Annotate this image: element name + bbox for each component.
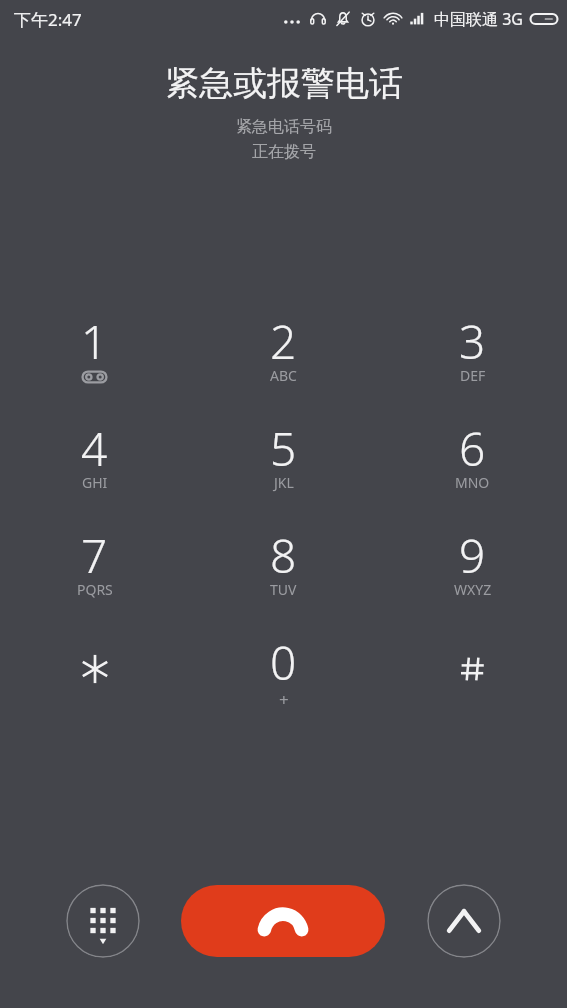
staticText: 3 — [459, 310, 486, 373]
staticText: PQRS — [77, 580, 113, 599]
staticText: 8 — [270, 524, 297, 587]
staticText: TUV — [270, 580, 297, 599]
staticText: MNO — [455, 473, 490, 492]
button[interactable]: 9 — [378, 514, 567, 621]
button[interactable]: End call — [181, 885, 385, 957]
staticText: 9 — [459, 524, 486, 587]
staticText: 紧急或报警电话 — [165, 62, 403, 105]
staticText: GHI — [82, 473, 108, 492]
button[interactable]: 8 — [189, 514, 378, 621]
staticText: 紧急电话号码 — [236, 117, 332, 137]
staticText: ABC — [270, 366, 297, 385]
staticText: 中国联通 3G — [434, 8, 523, 30]
button[interactable]: Hide dialpad — [66, 884, 140, 958]
button[interactable]: 3 — [378, 300, 567, 407]
staticText: 4 — [81, 417, 108, 480]
button[interactable]: 5 — [189, 407, 378, 514]
staticText: + — [279, 688, 289, 711]
staticText: JKL — [274, 473, 294, 492]
button[interactable]: 7 — [0, 514, 189, 621]
button[interactable] — [0, 621, 189, 728]
staticText: 7 — [81, 524, 108, 587]
staticText: 2 — [270, 310, 297, 373]
button[interactable]: 6 — [378, 407, 567, 514]
staticText: 下午2:47 — [14, 8, 82, 31]
staticText: 正在拨号 — [252, 142, 316, 162]
staticText: 6 — [459, 417, 486, 480]
staticText: 5 — [270, 417, 297, 480]
button[interactable]: 2 — [189, 300, 378, 407]
button[interactable]: 4 — [0, 407, 189, 514]
staticText: 1 — [81, 310, 108, 373]
button[interactable]: 0 — [189, 621, 378, 728]
staticText: 0 — [270, 631, 297, 694]
button[interactable]: Expand — [427, 884, 501, 958]
staticText: WXYZ — [454, 580, 492, 599]
staticText: DEF — [460, 366, 486, 385]
button[interactable]: 1 — [0, 300, 189, 407]
button[interactable] — [378, 621, 567, 728]
